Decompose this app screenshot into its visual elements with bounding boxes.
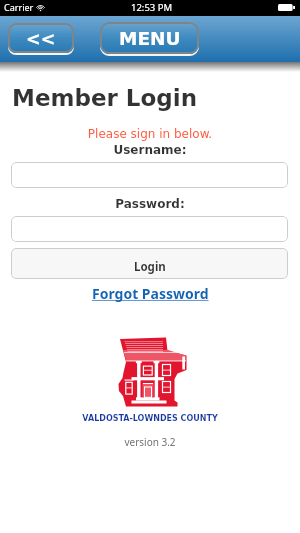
staticText: Username: bbox=[0, 143, 300, 157]
staticText: Password: bbox=[0, 197, 300, 211]
button[interactable] bbox=[11, 216, 288, 242]
staticText: Member Login bbox=[12, 85, 198, 112]
button[interactable] bbox=[11, 162, 288, 188]
staticText: Please sign in below. bbox=[0, 127, 300, 141]
button[interactable]: Forgot Password bbox=[92, 284, 209, 303]
staticText: MENU bbox=[119, 28, 181, 50]
button[interactable]: Back bbox=[8, 23, 74, 55]
staticText: Login bbox=[134, 259, 166, 275]
button[interactable]: MENU bbox=[100, 22, 199, 56]
staticText: version 3.2 bbox=[0, 435, 300, 449]
button[interactable]: Login bbox=[11, 248, 288, 279]
staticText: Carrier bbox=[4, 1, 34, 13]
staticText: 12:53 PM bbox=[131, 1, 173, 14]
staticText: VALDOSTA-LOWNDES COUNTY bbox=[0, 414, 300, 423]
staticText: << bbox=[26, 29, 56, 49]
